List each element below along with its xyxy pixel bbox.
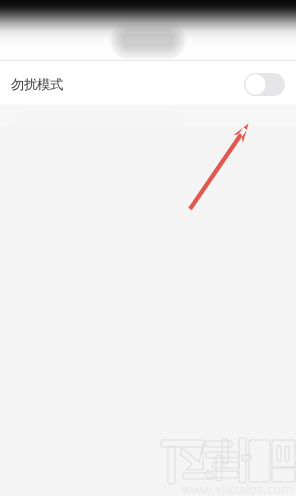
- staticText: 勿扰模式: [11, 76, 63, 93]
- staticText: www.xiazaiba.com: [181, 480, 293, 496]
- button[interactable]: 勿扰模式: [0, 61, 296, 108]
